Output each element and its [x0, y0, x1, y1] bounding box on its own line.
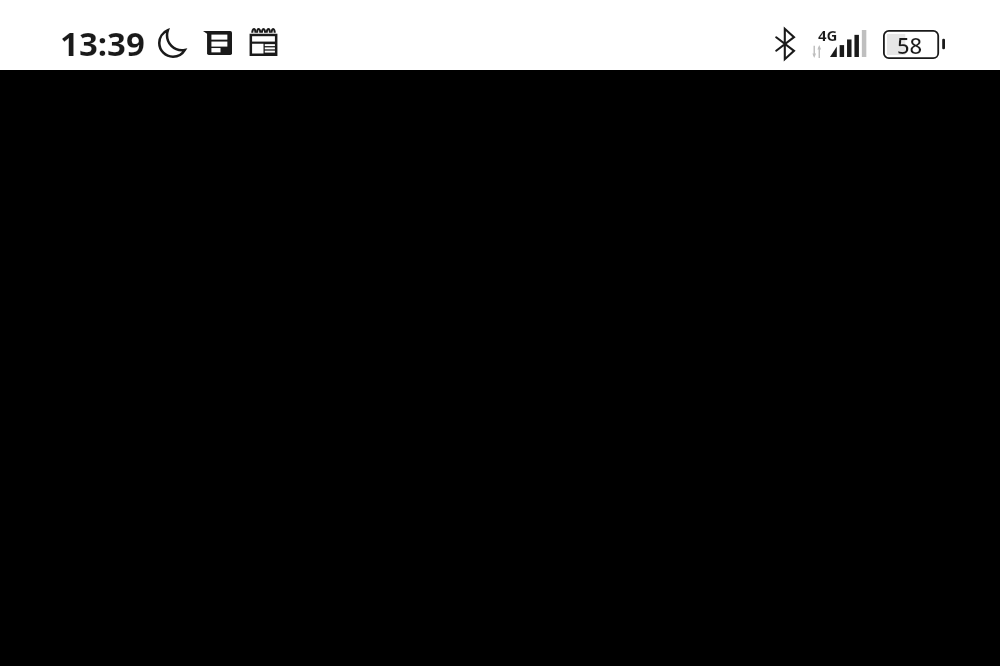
button[interactable]: Battery 58 percent: [883, 30, 945, 59]
button[interactable]: Do not disturb: [158, 28, 188, 58]
button[interactable]: Bluetooth: [775, 28, 795, 60]
button[interactable]: Notification: [203, 31, 232, 55]
button[interactable]: Clock 13:39: [60, 21, 145, 66]
button[interactable]: Calendar: [249, 29, 278, 56]
staticText: 4G: [818, 25, 838, 45]
button[interactable]: Content: [0, 0, 1000, 666]
staticText: 13:39: [60, 21, 145, 66]
staticText: 58: [897, 30, 923, 54]
